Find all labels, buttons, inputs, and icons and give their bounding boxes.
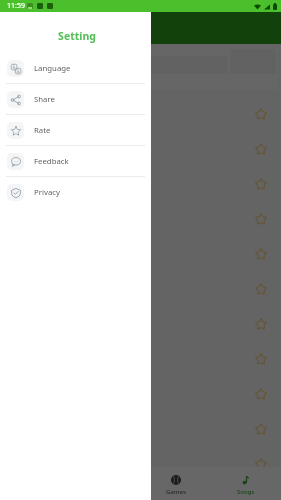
- staticText: Songs: [237, 488, 255, 496]
- staticText: Privacy: [34, 187, 61, 198]
- staticText: Feedback: [34, 156, 69, 167]
- button[interactable]: Songs: [211, 467, 281, 500]
- button[interactable]: Rate: [0, 115, 151, 145]
- button[interactable]: Games: [141, 467, 211, 500]
- staticText: Setting: [3, 29, 151, 43]
- staticText: Games: [166, 488, 186, 496]
- button[interactable]: Privacy: [0, 177, 151, 207]
- button[interactable]: Share: [0, 84, 151, 114]
- staticText: Share: [34, 94, 55, 105]
- staticText: Rate: [34, 125, 51, 136]
- button[interactable]: Feedback: [0, 146, 151, 176]
- staticText: 11:59: [7, 1, 25, 11]
- staticText: Ringtones: [34, 21, 88, 36]
- staticText: Language: [34, 63, 71, 74]
- button[interactable]: Language: [0, 53, 151, 83]
